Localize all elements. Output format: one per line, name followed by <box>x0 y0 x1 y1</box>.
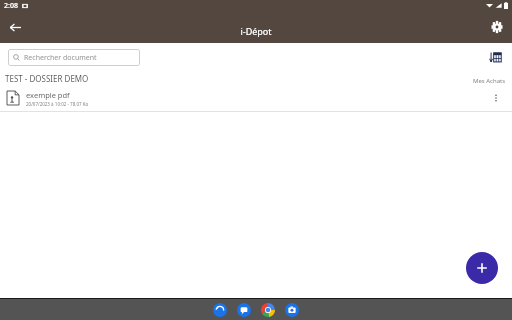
button[interactable]: exemple pdf <box>0 85 512 111</box>
button[interactable]: Paramètres <box>482 12 512 42</box>
button[interactable]: Trier <box>484 46 506 68</box>
button[interactable]: Ajouter un document <box>466 252 498 284</box>
staticText: 2:08 <box>4 1 18 11</box>
button[interactable]: Chrome <box>260 302 276 318</box>
staticText: 20/07/2023 à 10:02 - 78.07 Ko <box>26 101 89 107</box>
button[interactable]: Rechercher document <box>8 49 140 66</box>
button[interactable]: Téléphone <box>212 302 228 318</box>
staticText: TEST - DOSSIER DEMO <box>5 73 89 84</box>
staticText: exemple pdf <box>26 90 70 100</box>
button[interactable]: Retour <box>0 12 30 42</box>
staticText: Rechercher document <box>24 53 97 63</box>
button[interactable]: Appareil photo <box>284 302 300 318</box>
staticText: i-Dépot <box>240 25 272 37</box>
button[interactable]: Messages <box>236 302 252 318</box>
button[interactable]: Plus d'options <box>484 86 508 110</box>
staticText: Mes Achats <box>473 77 506 85</box>
